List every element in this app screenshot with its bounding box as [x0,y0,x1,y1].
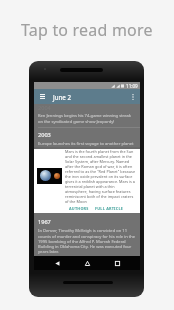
staticText: 11:09 [126,83,138,89]
staticText: 2003 [38,131,51,139]
staticText: Ken Jennings begins his 74-game winning … [38,113,136,124]
button[interactable]: Home [80,256,94,270]
button[interactable]: More options [128,92,137,101]
button[interactable]: AUTHORS [67,205,91,212]
staticText: Tap to read more [21,19,153,41]
button[interactable]: Mars is the fourth planet from the Sun a… [34,149,140,213]
button[interactable]: 2004 [34,104,140,127]
staticText: Europe launches its first voyage to anot… [38,141,134,147]
button[interactable]: 1967 [34,213,140,254]
button[interactable]: Recent apps [110,256,124,270]
staticText: Mars is the fourth planet from the Sun a… [65,149,136,204]
staticText: June 2 [53,93,71,101]
staticText: In Denver, Timothy McVeigh is convicted … [38,228,136,254]
button[interactable]: 2003 [34,128,140,147]
button[interactable]: FULL ARTICLE [93,205,126,212]
button[interactable]: Back [50,256,64,270]
button[interactable]: Open navigation menu [38,92,47,101]
staticText: 1967 [38,218,51,226]
